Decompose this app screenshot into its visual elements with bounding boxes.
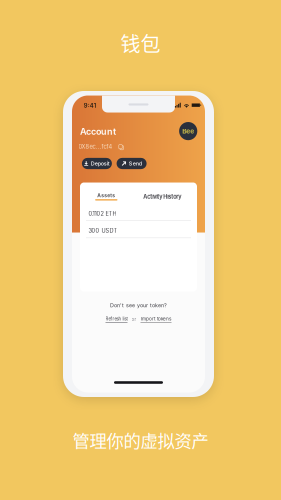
staticText: Bee [182, 127, 194, 135]
button[interactable]: Bee wallet logo [179, 122, 197, 140]
staticText: Refresh list [105, 316, 127, 321]
button[interactable]: Refresh list [105, 316, 127, 323]
button[interactable]: 0.1102 ETH [80, 206, 197, 221]
staticText: 9:41 [84, 102, 96, 109]
staticText: Activity History [143, 193, 181, 200]
staticText: Don't see your token? [110, 302, 167, 309]
staticText: Account [80, 126, 116, 137]
staticText: Send [129, 160, 142, 167]
staticText: Deposit [91, 160, 110, 167]
button[interactable]: Import tokens [140, 316, 171, 323]
staticText: 0.1102 ETH [88, 210, 116, 217]
button[interactable]: Deposit [82, 158, 112, 169]
staticText: 钱包 [120, 28, 160, 57]
button[interactable]: Send [117, 158, 147, 169]
button[interactable]: Activity History [140, 192, 184, 202]
button[interactable]: Copy address [118, 144, 123, 149]
staticText: or [131, 317, 136, 322]
button[interactable]: 300 USDT [80, 223, 197, 238]
staticText: Assets [97, 192, 115, 198]
staticText: 0X8ec...fcf4 [78, 143, 112, 150]
staticText: Import tokens [141, 316, 171, 322]
button[interactable]: Assets [92, 191, 120, 202]
staticText: 管理你的虚拟资产 [72, 427, 208, 453]
staticText: 300 USDT [88, 227, 117, 234]
